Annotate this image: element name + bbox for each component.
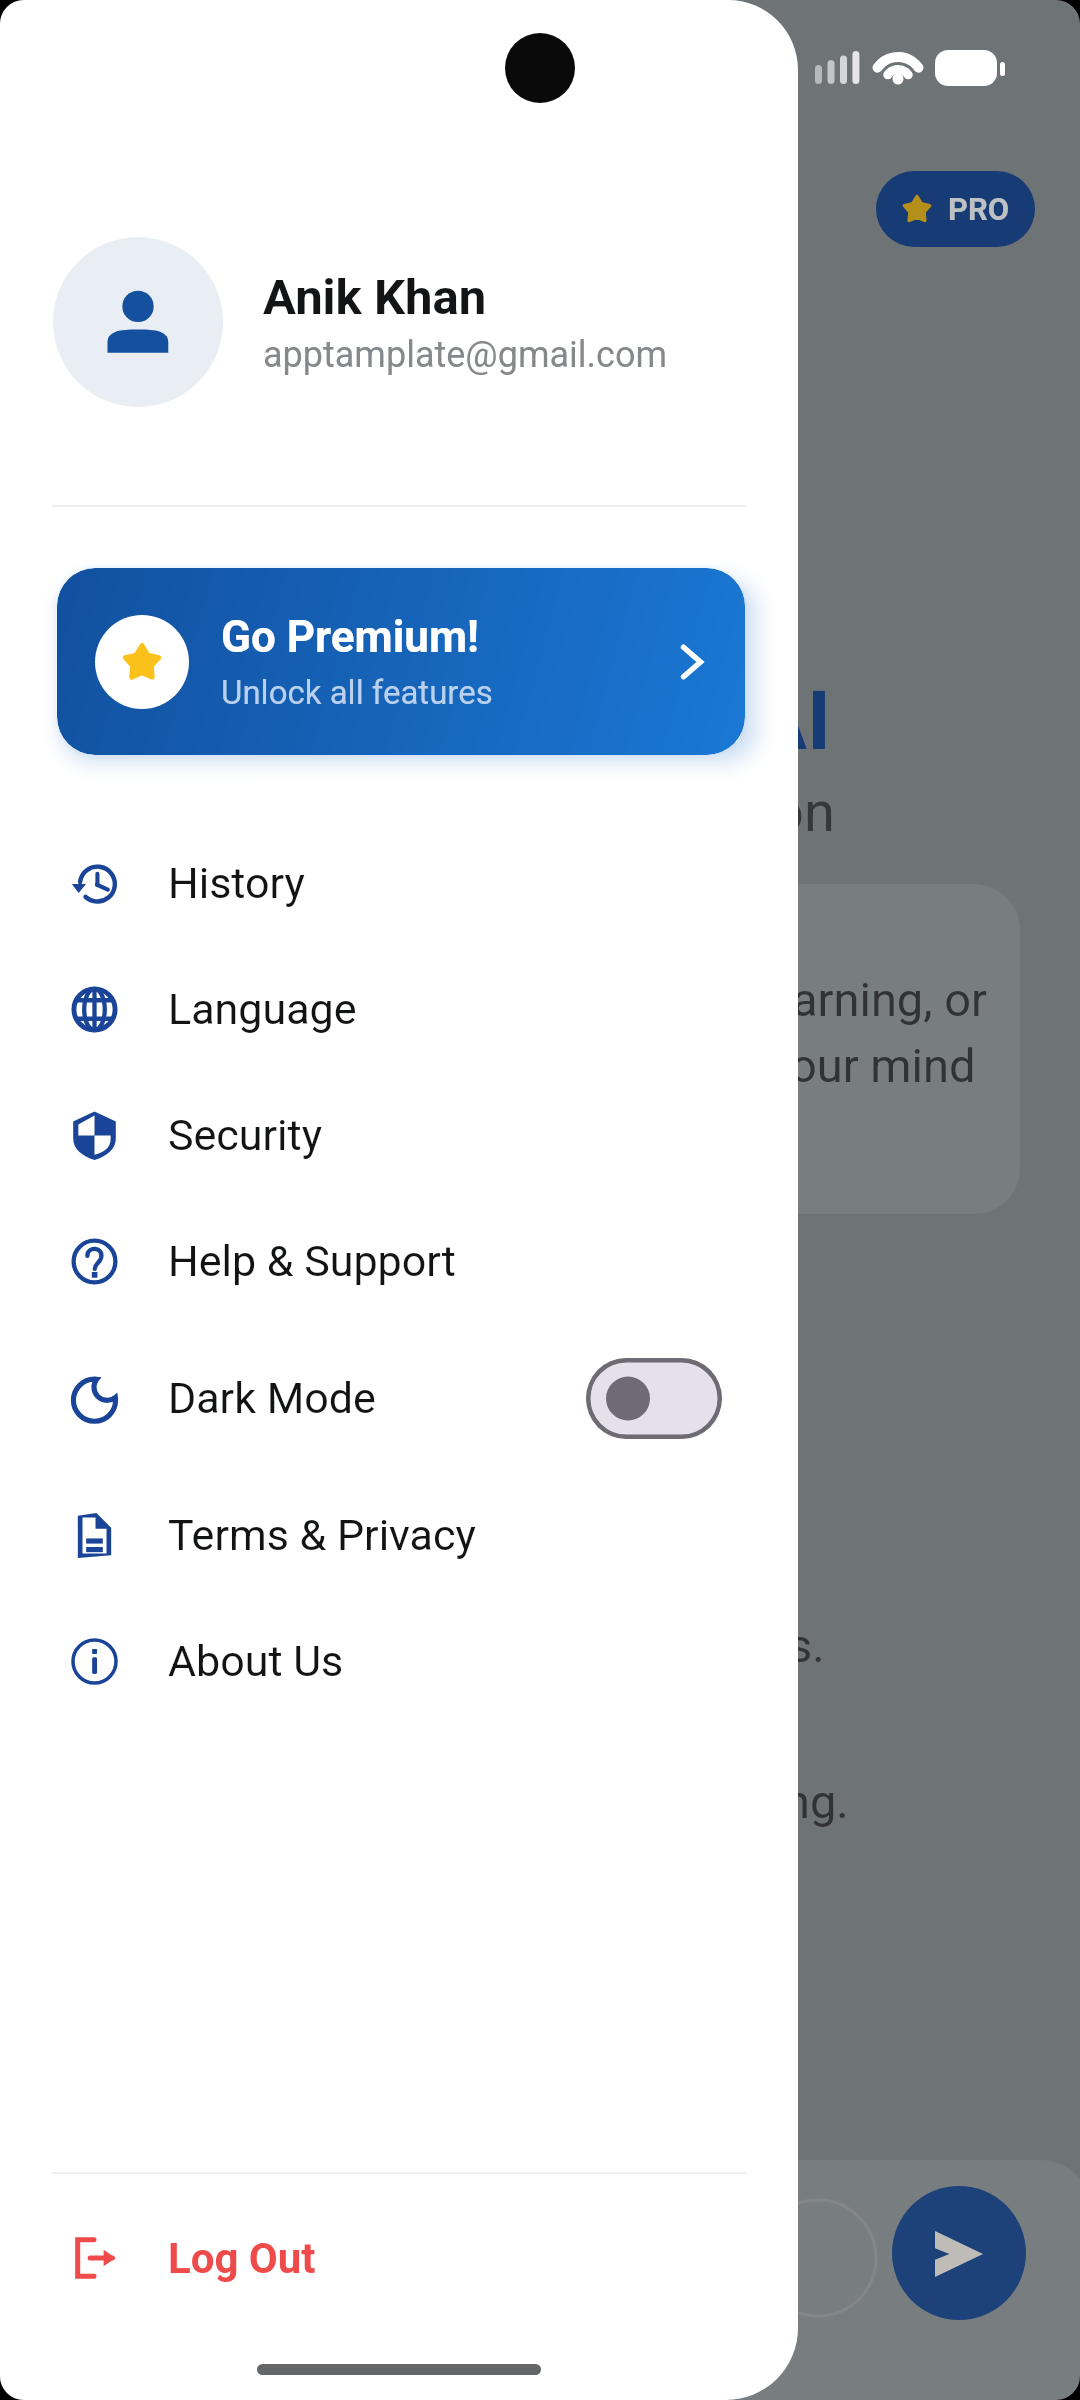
staticText: History <box>168 858 305 908</box>
staticText: Go Premium! <box>221 611 480 663</box>
staticText: Language <box>168 984 357 1034</box>
button[interactable]: Log Out <box>0 2174 798 2342</box>
button[interactable]: About Us <box>0 1598 798 1724</box>
staticText: AI <box>752 673 832 769</box>
button[interactable]: Language <box>0 946 798 1072</box>
staticText: Dark Mode <box>168 1373 376 1423</box>
button[interactable]: Security <box>0 1072 798 1198</box>
staticText: Security <box>168 1110 322 1160</box>
staticText: Log Out <box>168 2234 316 2283</box>
staticText: About Us <box>168 1636 344 1686</box>
staticText: Anik Khan <box>263 269 487 326</box>
button[interactable]: Go Premium! <box>57 568 745 755</box>
staticText: ng. <box>784 1774 849 1829</box>
staticText: Help & Support <box>168 1236 456 1286</box>
button[interactable]: Dark Mode <box>0 1324 798 1472</box>
staticText: s. <box>788 1618 825 1673</box>
button[interactable]: Go Pro <box>876 171 1035 247</box>
staticText: arning, or <box>792 972 987 1027</box>
button[interactable]: Dark mode toggle <box>586 1358 722 1439</box>
staticText: our mind <box>790 1038 976 1093</box>
staticText: Terms & Privacy <box>168 1510 476 1560</box>
button[interactable]: History <box>0 820 798 946</box>
staticText: Unlock all features <box>221 673 493 712</box>
staticText: PRO <box>948 191 1010 227</box>
staticText: on <box>772 779 835 845</box>
staticText: apptamplate@gmail.com <box>263 334 667 376</box>
button[interactable]: Help & Support <box>0 1198 798 1324</box>
button[interactable]: Terms & Privacy <box>0 1472 798 1598</box>
button[interactable]: Send <box>892 2186 1026 2320</box>
